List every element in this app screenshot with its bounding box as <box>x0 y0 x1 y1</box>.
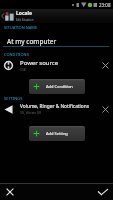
staticText: CONDITIONS <box>4 52 29 57</box>
button[interactable]: Cancel <box>0 184 19 200</box>
button[interactable]: Navigate up <box>0 9 14 23</box>
staticText: SETTINGS <box>4 96 23 101</box>
button[interactable]: Volume, Ringer & Notifications <box>0 102 113 116</box>
staticText: Add Condition <box>46 84 73 89</box>
staticText: USB <box>20 68 26 72</box>
staticText: At my computer <box>7 37 57 46</box>
staticText: Add Setting <box>46 131 68 136</box>
button[interactable]: Remove <box>99 59 112 72</box>
staticText: SITUATION NAME <box>4 25 38 30</box>
staticText: Power source <box>20 59 59 67</box>
button[interactable]: Power source <box>0 58 113 72</box>
button[interactable]: Add Condition <box>29 79 85 94</box>
staticText: 0%, Vibrate Off <box>20 111 42 115</box>
staticText: Volume, Ringer & Notifications <box>20 103 89 110</box>
button[interactable]: Remove <box>99 103 112 116</box>
button[interactable]: Done <box>92 184 113 200</box>
staticText: Edit Situation <box>16 18 34 22</box>
staticText: 23:08 <box>99 2 111 8</box>
staticText: Locale <box>16 10 32 17</box>
button[interactable]: Add Setting <box>29 126 85 141</box>
